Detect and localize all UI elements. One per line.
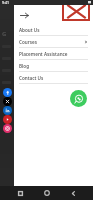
button[interactable]: Placement Assistance [14, 48, 93, 59]
staticText: Courses [19, 39, 84, 45]
button[interactable]: Close menu [62, 2, 90, 21]
button[interactable]: Recent apps [14, 187, 26, 199]
button[interactable]: Blog [14, 60, 93, 71]
staticText: Blog [19, 63, 88, 69]
button[interactable]: Forward [19, 10, 30, 21]
button[interactable]: Instagram [3, 124, 12, 133]
button[interactable]: YouTube [3, 115, 12, 124]
staticText: 9:41 [2, 0, 9, 5]
button[interactable]: X [3, 97, 12, 106]
button[interactable]: Chat on WhatsApp [70, 90, 87, 107]
button[interactable]: LinkedIn [3, 106, 12, 115]
staticText: Contact Us [19, 75, 88, 81]
button[interactable]: Facebook [3, 88, 12, 97]
button[interactable]: Contact Us [14, 72, 93, 83]
button[interactable]: Courses [14, 36, 93, 47]
staticText: About Us [19, 27, 88, 33]
button[interactable]: Back [67, 187, 79, 199]
staticText: G [2, 30, 7, 38]
staticText: Placement Assistance [19, 51, 88, 57]
button[interactable]: About Us [14, 24, 93, 35]
button[interactable]: Home [41, 187, 53, 199]
